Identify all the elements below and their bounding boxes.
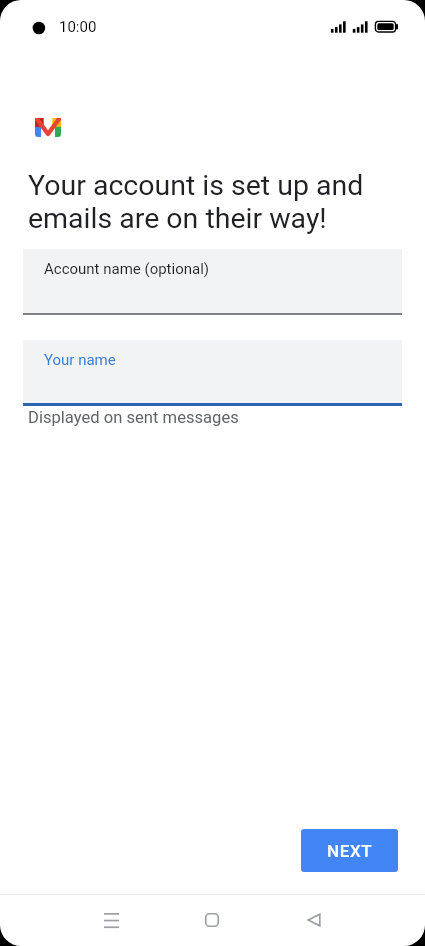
button[interactable]: Account name (optional): [23, 249, 402, 316]
button[interactable]: Your name: [23, 340, 402, 407]
button[interactable]: NEXT: [301, 829, 398, 872]
staticText: Your account is set up and emails are on…: [28, 169, 364, 235]
button[interactable]: Back: [284, 900, 344, 940]
staticText: Account name (optional): [44, 260, 210, 278]
button[interactable]: Recent apps: [81, 900, 141, 940]
button[interactable]: Home: [182, 900, 242, 940]
staticText: NEXT: [327, 841, 373, 861]
staticText: 10:00: [59, 18, 97, 36]
staticText: Displayed on sent messages: [28, 408, 239, 427]
staticText: Your name: [44, 351, 116, 369]
